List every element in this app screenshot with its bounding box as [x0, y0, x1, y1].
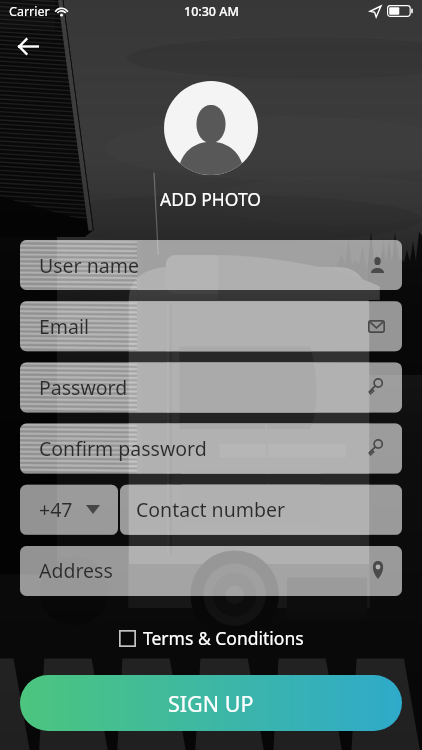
- button[interactable]: +47: [20, 484, 118, 534]
- button[interactable]: SIGN UP: [20, 675, 402, 731]
- staticText: User name: [39, 252, 139, 279]
- staticText: Contact number: [136, 496, 285, 523]
- staticText: Address: [39, 557, 113, 584]
- button[interactable]: User name: [20, 240, 402, 290]
- staticText: +47: [39, 496, 73, 523]
- staticText: Terms & Conditions: [143, 626, 304, 650]
- staticText: Carrier: [9, 3, 50, 20]
- button[interactable]: Email: [20, 301, 402, 351]
- button[interactable]: Terms & Conditions: [115, 622, 308, 654]
- staticText: ADD PHOTO: [160, 187, 262, 211]
- button[interactable]: Contact number: [120, 484, 402, 534]
- button[interactable]: Add photo: [164, 81, 258, 175]
- staticText: 10:30 AM: [184, 3, 239, 20]
- button[interactable]: Confirm password: [20, 423, 402, 473]
- staticText: Password: [39, 374, 128, 401]
- staticText: SIGN UP: [168, 689, 254, 718]
- staticText: Email: [39, 313, 90, 340]
- button[interactable]: Address: [20, 545, 402, 595]
- button[interactable]: Password: [20, 362, 402, 412]
- button[interactable]: Back: [7, 25, 50, 68]
- staticText: Confirm password: [39, 435, 207, 462]
